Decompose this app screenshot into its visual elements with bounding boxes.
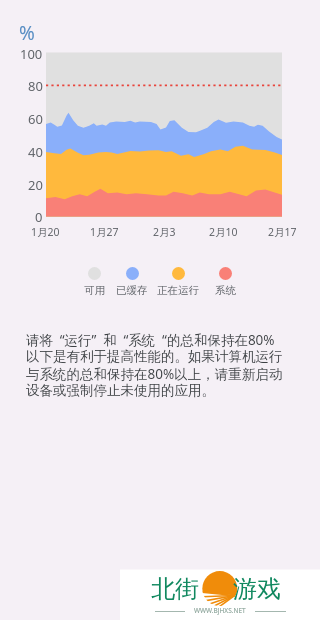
staticText: 40 xyxy=(28,143,43,161)
staticText: 与系统的总和保持在80%以上，请重新启动 xyxy=(26,365,283,382)
staticText: 可用 xyxy=(84,284,105,297)
staticText: 60 xyxy=(28,110,43,128)
staticText: WWW.BJHXS.NET xyxy=(194,606,246,615)
staticText: 北街 xyxy=(151,574,199,604)
button[interactable]: 已缓存 xyxy=(102,267,162,297)
staticText: 请将 “运行” 和 “系统 “的总和保持在80% xyxy=(26,331,275,348)
staticText: 以下是有利于提高性能的。如果计算机运行 xyxy=(26,348,283,365)
staticText: 20 xyxy=(28,176,43,194)
staticText: 1月27 xyxy=(90,225,119,239)
button[interactable]: 正在运行 xyxy=(148,267,208,297)
staticText: 2月3 xyxy=(153,225,176,239)
staticText: 已缓存 xyxy=(116,284,148,297)
staticText: 1月20 xyxy=(31,225,60,239)
staticText: 0 xyxy=(35,208,43,226)
staticText: 正在运行 xyxy=(157,284,199,297)
staticText: 80 xyxy=(28,77,43,95)
staticText: % xyxy=(19,20,35,46)
staticText: 2月17 xyxy=(268,225,297,239)
button[interactable]: 可用 xyxy=(64,267,124,297)
staticText: 设备或强制停止未使用的应用。 xyxy=(26,382,215,399)
staticText: 系统 xyxy=(215,284,236,297)
staticText: 2月10 xyxy=(209,225,238,239)
staticText: 100 xyxy=(20,45,43,63)
staticText: 游戏 xyxy=(233,574,281,604)
button[interactable]: 系统 xyxy=(195,267,255,297)
